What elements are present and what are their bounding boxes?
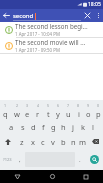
staticText: 7 [67,103,70,108]
button[interactable]: h [58,119,68,134]
button[interactable]: v [48,134,58,149]
staticText: x [31,137,35,147]
staticText: 9 [87,103,90,108]
button[interactable]: g [48,119,58,134]
button[interactable]: 6 [53,102,63,119]
button[interactable]: 3 [22,102,33,119]
button[interactable]: b [58,134,68,149]
button[interactable]: 0 [93,102,103,119]
staticText: 1 [4,103,7,108]
button[interactable]: 9 [83,102,93,119]
button[interactable]: 8 [73,102,83,119]
button[interactable]: z [16,134,27,149]
staticText: d [31,122,36,132]
button[interactable]: Backspace [88,134,103,149]
staticText: second [13,12,34,20]
staticText: f [42,122,45,132]
button[interactable]: s [17,119,28,134]
button[interactable]: 2 [11,102,22,119]
button[interactable]: n [68,134,78,149]
staticText: 4 [37,103,40,108]
button[interactable]: second [13,9,81,22]
button[interactable]: The second lesson begi... [0,22,103,37]
staticText: b [61,137,66,147]
staticText: o [86,109,91,119]
staticText: j [72,122,74,132]
staticText: s [21,122,25,132]
staticText: n [71,137,76,147]
staticText: t [47,109,50,119]
button[interactable]: 4 [33,102,43,119]
button[interactable]: l [88,119,98,134]
button[interactable]: f [38,119,48,134]
button[interactable]: 5 [43,102,53,119]
button[interactable]: x [27,134,38,149]
staticText: 1 Apr 2017 - 10:04 PM [15,31,60,37]
staticText: The second movie will ... [15,38,86,46]
button[interactable]: 1 [0,102,11,119]
staticText: 6 [57,103,60,108]
staticText: 18:05 [88,1,101,8]
staticText: w [14,109,20,119]
staticText: e [25,109,30,119]
button[interactable]: Back [0,170,35,183]
button[interactable]: , [15,149,25,170]
button[interactable]: d [28,119,38,134]
staticText: 8 [77,103,80,108]
staticText: . [79,156,81,164]
staticText: 2 [16,103,19,108]
staticText: p [96,109,101,119]
staticText: m [79,137,87,147]
staticText: , [19,156,21,164]
button[interactable]: . [75,149,85,170]
staticText: h [61,122,66,132]
button[interactable]: Search [85,149,103,170]
staticText: g [51,122,56,132]
button[interactable]: m [78,134,88,149]
button[interactable]: Recents [69,170,103,183]
staticText: ?123 [3,157,12,162]
staticText: a [9,122,14,132]
staticText: y [56,109,60,119]
staticText: The second lesson begi... [15,22,88,30]
staticText: 1 Apr 2017 - 09:50 PM [15,47,60,53]
button[interactable]: More options [93,9,103,22]
button[interactable]: Clear [81,9,93,22]
button[interactable]: j [68,119,78,134]
button[interactable]: ?123 [0,149,15,170]
staticText: l [92,122,94,132]
staticText: k [81,122,86,132]
staticText: r [36,109,40,119]
staticText: c [41,137,45,147]
staticText: i [78,109,80,119]
button[interactable]: Shift [0,134,16,149]
button[interactable]: a [6,119,17,134]
staticText: u [66,109,71,119]
staticText: q [3,109,8,119]
staticText: v [51,137,55,147]
button[interactable]: c [38,134,48,149]
staticText: 3 [26,103,29,108]
button[interactable]: 7 [63,102,73,119]
button[interactable]: k [78,119,88,134]
staticText: z [20,137,24,147]
staticText: 5 [47,103,50,108]
button[interactable]: Back [0,9,13,22]
button[interactable]: The second movie will ... [0,38,103,53]
button[interactable]: Home [35,170,69,183]
staticText: 0 [97,103,100,108]
